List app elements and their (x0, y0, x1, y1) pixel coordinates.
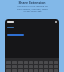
button[interactable] (7, 34, 24, 36)
staticText: Add links to your reading list from Twit… (17, 5, 48, 13)
staticText: Share Extension (18, 0, 46, 5)
